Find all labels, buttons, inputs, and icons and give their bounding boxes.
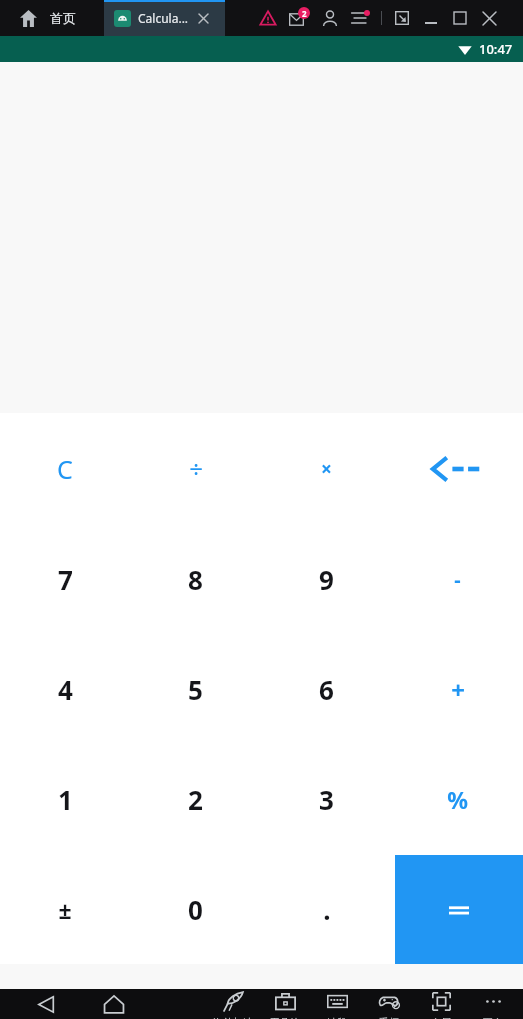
button[interactable]: 7 <box>0 524 130 634</box>
staticText: 7 <box>58 562 73 597</box>
button[interactable]: Close <box>477 6 501 30</box>
button[interactable]: ± <box>0 854 130 964</box>
staticText: C <box>57 452 73 486</box>
staticText: 2 <box>302 8 307 19</box>
button[interactable]: × <box>261 413 392 524</box>
button[interactable]: Backspace <box>392 413 523 524</box>
staticText: ± <box>58 894 72 925</box>
button[interactable]: 0 <box>130 854 261 964</box>
button[interactable]: Minimize <box>419 6 443 30</box>
button[interactable]: Menu <box>347 5 373 31</box>
button[interactable]: 8 <box>130 524 261 634</box>
button[interactable]: Warning <box>255 5 281 31</box>
button[interactable]: Equals <box>395 855 523 964</box>
button[interactable]: 海外加速 <box>207 989 259 1019</box>
staticText: 5 <box>188 672 203 707</box>
button[interactable]: + <box>392 634 523 744</box>
staticText: 2 <box>188 782 203 817</box>
staticText: 全屏 <box>431 1016 451 1019</box>
button[interactable]: % <box>392 744 523 854</box>
staticText: 首页 <box>50 10 76 26</box>
button[interactable]: 5 <box>130 634 261 744</box>
staticText: % <box>447 784 468 815</box>
staticText: 3 <box>319 782 334 817</box>
staticText: . <box>323 892 331 927</box>
staticText: 海外加速 <box>213 1016 253 1019</box>
staticText: - <box>454 566 461 593</box>
staticText: 0 <box>188 892 203 927</box>
button[interactable]: 9 <box>261 524 392 634</box>
staticText: 4 <box>58 672 73 707</box>
button[interactable]: 工具箱 <box>259 989 311 1019</box>
button[interactable]: 键鼠 <box>311 989 363 1019</box>
button[interactable]: 手柄 <box>363 989 415 1019</box>
staticText: 1 <box>58 782 73 817</box>
button[interactable]: Account <box>317 5 343 31</box>
staticText: × <box>321 456 332 482</box>
staticText: 8 <box>188 562 203 597</box>
button[interactable]: 全屏 <box>415 989 467 1019</box>
staticText: 10:47 <box>479 40 513 58</box>
button[interactable]: 4 <box>0 634 130 744</box>
button[interactable]: Maximize <box>448 6 472 30</box>
button[interactable]: . <box>261 854 392 964</box>
button[interactable]: 更多 <box>467 989 519 1019</box>
button[interactable]: Messages <box>287 5 313 31</box>
staticText: 9 <box>319 562 334 597</box>
staticText: ÷ <box>189 452 203 485</box>
button[interactable]: Home <box>94 989 134 1019</box>
button[interactable]: 3 <box>261 744 392 854</box>
button[interactable]: Close tab <box>195 10 211 26</box>
button[interactable]: 首页 <box>48 10 78 26</box>
button[interactable]: 2 <box>130 744 261 854</box>
button[interactable]: - <box>392 524 523 634</box>
staticText: 6 <box>319 672 334 707</box>
staticText: 更多 <box>483 1016 503 1019</box>
staticText: Calcula... <box>138 10 189 26</box>
button[interactable]: Back <box>26 989 66 1019</box>
button[interactable]: C <box>0 413 130 524</box>
staticText: 工具箱 <box>270 1016 300 1019</box>
button[interactable]: ÷ <box>130 413 261 524</box>
button[interactable]: Calcula... <box>104 0 225 36</box>
button[interactable]: Resize <box>390 6 414 30</box>
staticText: 键鼠 <box>327 1016 347 1019</box>
staticText: 手柄 <box>379 1016 399 1019</box>
button[interactable]: Home <box>14 4 42 32</box>
button[interactable]: 6 <box>261 634 392 744</box>
button[interactable]: 1 <box>0 744 130 854</box>
staticText: + <box>451 673 465 706</box>
